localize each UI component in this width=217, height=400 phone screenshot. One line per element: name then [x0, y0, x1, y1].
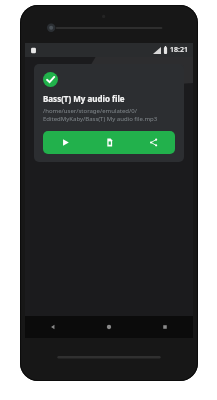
staticText: Bass(T) My audio file [43, 93, 125, 104]
staticText: /home/user/storage/emulated/0/EditedMyKa… [43, 107, 175, 123]
button[interactable]: Share [131, 131, 175, 154]
button[interactable]: Play [43, 131, 87, 154]
button[interactable]: Save file [87, 131, 131, 154]
button[interactable]: Home [81, 316, 137, 338]
staticText: 18:21 [170, 45, 188, 55]
button[interactable]: Bass(T) My audio file [34, 64, 184, 162]
button[interactable]: Recent apps [137, 316, 193, 338]
button[interactable]: Back [25, 316, 81, 338]
